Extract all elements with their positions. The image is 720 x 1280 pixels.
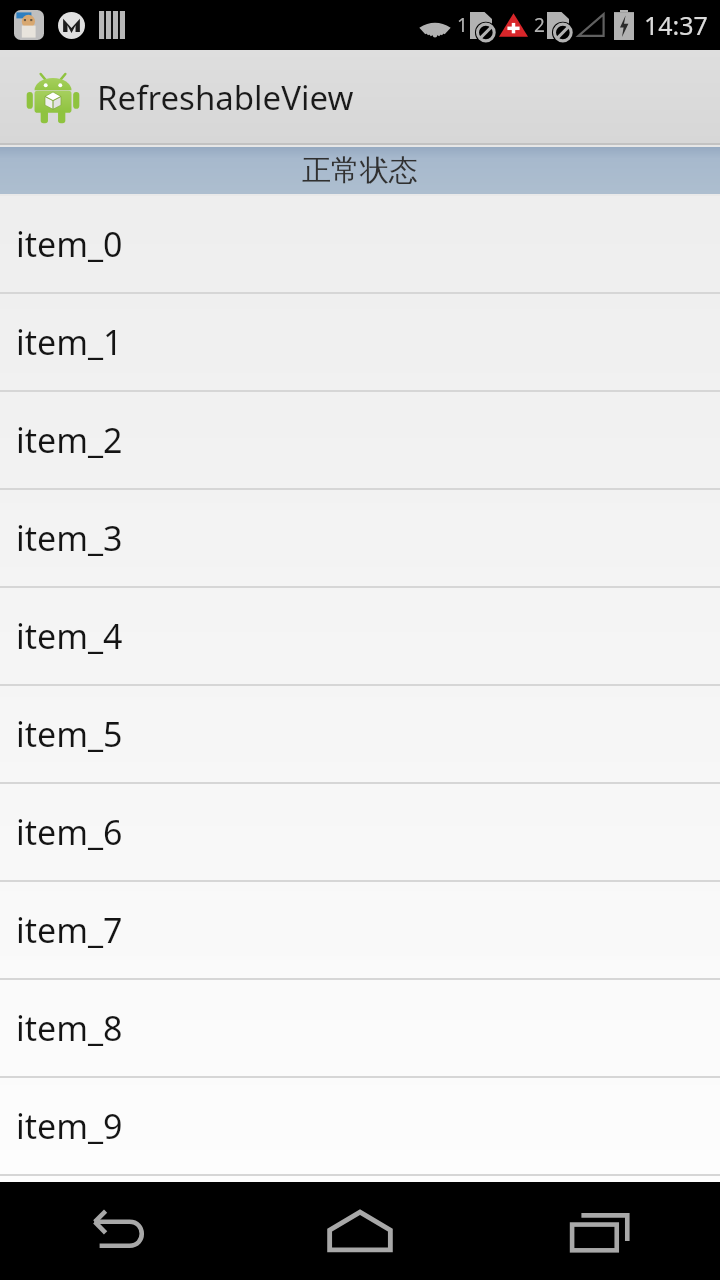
button[interactable]: item_5 [0,686,720,782]
staticText: item_4 [16,613,123,659]
staticText: item_8 [16,1005,123,1051]
button[interactable]: item_7 [0,882,720,978]
staticText: item_7 [16,907,123,953]
button[interactable]: Back [0,1182,240,1280]
button[interactable]: item_4 [0,588,720,684]
staticText: item_2 [16,417,123,463]
button[interactable]: item_0 [0,196,720,292]
button[interactable]: item_6 [0,784,720,880]
staticText: item_0 [16,221,123,267]
staticText: 正常状态 [302,152,418,189]
button[interactable]: Recent apps [480,1182,720,1280]
staticText: item_3 [16,515,123,561]
staticText: item_5 [16,711,123,757]
button[interactable]: item_1 [0,294,720,390]
staticText: 14:37 [644,8,708,42]
button[interactable]: 正常状态 [0,147,720,194]
button[interactable]: item_3 [0,490,720,586]
button[interactable]: item_9 [0,1078,720,1174]
staticText: item_1 [16,319,123,365]
staticText: RefreshableView [97,75,354,120]
button[interactable]: Home [240,1182,480,1280]
staticText: item_6 [16,809,123,855]
button[interactable]: item_8 [0,980,720,1076]
staticText: item_9 [16,1103,123,1149]
staticText: 2 [534,12,545,38]
button[interactable]: item_2 [0,392,720,488]
staticText: 1 [457,12,468,38]
